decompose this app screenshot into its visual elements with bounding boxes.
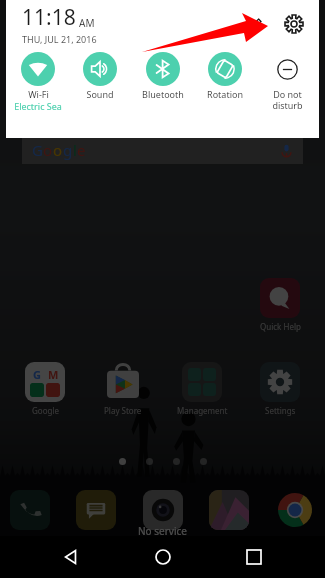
other: Messages [76, 490, 116, 530]
staticText: THU, JUL 21, 2016 [22, 33, 97, 45]
button[interactable]: G [22, 136, 303, 164]
staticText: Management [177, 405, 228, 416]
staticText: e [77, 140, 86, 160]
button[interactable]: Home [142, 536, 184, 578]
button[interactable]: Gallery [209, 490, 249, 530]
other: Phone [10, 490, 50, 530]
button[interactable]: Edit quick settings [243, 11, 269, 37]
staticText: Bluetooth [142, 88, 184, 100]
button[interactable]: Bluetooth [133, 50, 193, 100]
button[interactable]: Play Store [88, 362, 158, 416]
other: Gallery [209, 490, 249, 530]
staticText: Sound [86, 88, 114, 100]
other: Camera [143, 490, 183, 530]
button[interactable]: Settings [279, 9, 309, 39]
staticText: G [32, 140, 43, 160]
button[interactable]: Wi-Fi [8, 50, 68, 112]
staticText: Electric Sea [14, 100, 62, 112]
button[interactable]: Rotation [195, 50, 255, 100]
button[interactable]: Do not disturb [257, 50, 317, 111]
button[interactable]: Phone [10, 490, 50, 530]
staticText: AM [79, 16, 95, 30]
staticText: o [53, 140, 63, 160]
other: Chrome [275, 490, 315, 530]
button[interactable]: Home [142, 536, 184, 578]
button[interactable]: Recent apps [233, 536, 275, 578]
button[interactable]: Messages [76, 490, 116, 530]
staticText: Quick Help [260, 321, 301, 332]
staticText: No service [138, 524, 187, 538]
staticText: l [73, 140, 77, 160]
button[interactable]: Chrome [275, 490, 315, 530]
staticText: M [48, 367, 59, 381]
staticText: G [33, 367, 41, 381]
button[interactable]: Sound [70, 50, 130, 100]
button[interactable]: Management [167, 362, 237, 416]
staticText: Google [32, 405, 59, 416]
staticText: Settings [265, 405, 296, 416]
button[interactable]: Back [50, 536, 92, 578]
button[interactable]: Back [50, 536, 92, 578]
staticText: Wi-Fi [28, 88, 49, 100]
staticText: Play Store [104, 405, 142, 416]
staticText: Do not disturb [272, 88, 303, 111]
staticText: o [43, 140, 53, 160]
staticText: g [63, 140, 73, 160]
staticText: 11:18 [22, 3, 76, 32]
button[interactable]: Recent apps [233, 536, 275, 578]
staticText: Rotation [207, 88, 243, 100]
button[interactable]: G [10, 362, 80, 416]
button[interactable]: Quick Help [248, 278, 312, 332]
button[interactable]: Camera [143, 490, 183, 530]
button[interactable]: Settings [245, 362, 315, 416]
